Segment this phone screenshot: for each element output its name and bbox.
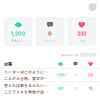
staticText: 0 xyxy=(48,30,52,37)
staticText: 1,200 xyxy=(56,73,64,77)
staticText: 1,200 xyxy=(11,30,26,37)
button[interactable]: 0 xyxy=(36,17,64,46)
staticText: こどでスキを発表が良った。 xyxy=(4,89,51,95)
staticText: スキ xyxy=(79,38,85,43)
staticText: 113 xyxy=(88,87,92,90)
staticText: リーダーはどのように情報を xyxy=(4,69,51,74)
button[interactable]: 232 xyxy=(67,17,96,46)
button[interactable]: 1,200 xyxy=(4,17,33,46)
staticText: 最終更新日時 2023/12/31 18:37 xyxy=(61,53,96,57)
button[interactable]: 答えれば最を与えたい一度 xyxy=(0,82,100,95)
staticText: コメント xyxy=(44,38,56,43)
staticText: 全体ビュー xyxy=(11,38,26,43)
button[interactable]: Account xyxy=(88,3,96,11)
staticText: 記事 xyxy=(4,61,12,67)
staticText: 答えれば最を与えたい一度 xyxy=(4,82,51,88)
staticText: 232 xyxy=(87,73,93,77)
staticText: 0 xyxy=(74,73,76,77)
button[interactable]: リーダーはどのように情報を xyxy=(0,68,100,81)
staticText: 980 xyxy=(57,87,63,90)
staticText: 0 xyxy=(74,87,76,90)
staticText: こえがえ合格。愛求が明確き xyxy=(4,75,51,81)
staticText: 232 xyxy=(77,30,86,37)
